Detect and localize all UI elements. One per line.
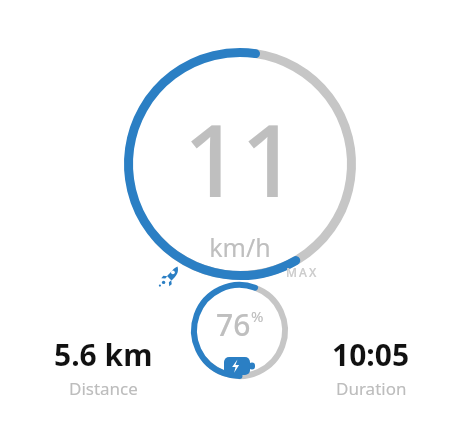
button[interactable]: Battery gauge: [191, 282, 288, 379]
button[interactable]: 10:05: [296, 334, 446, 400]
staticText: Distance: [69, 377, 138, 400]
staticText: Duration: [336, 377, 407, 400]
staticText: 11: [183, 90, 298, 226]
staticText: 10:05: [332, 334, 410, 375]
button[interactable]: 5.6 km: [28, 334, 178, 400]
staticText: %: [251, 306, 264, 326]
staticText: MAX: [286, 264, 319, 280]
staticText: 5.6 km: [54, 334, 153, 375]
button[interactable]: Speed boost: [156, 263, 182, 289]
button[interactable]: Speed gauge: [124, 48, 356, 280]
staticText: 76: [216, 304, 251, 345]
staticText: km/h: [209, 230, 271, 264]
